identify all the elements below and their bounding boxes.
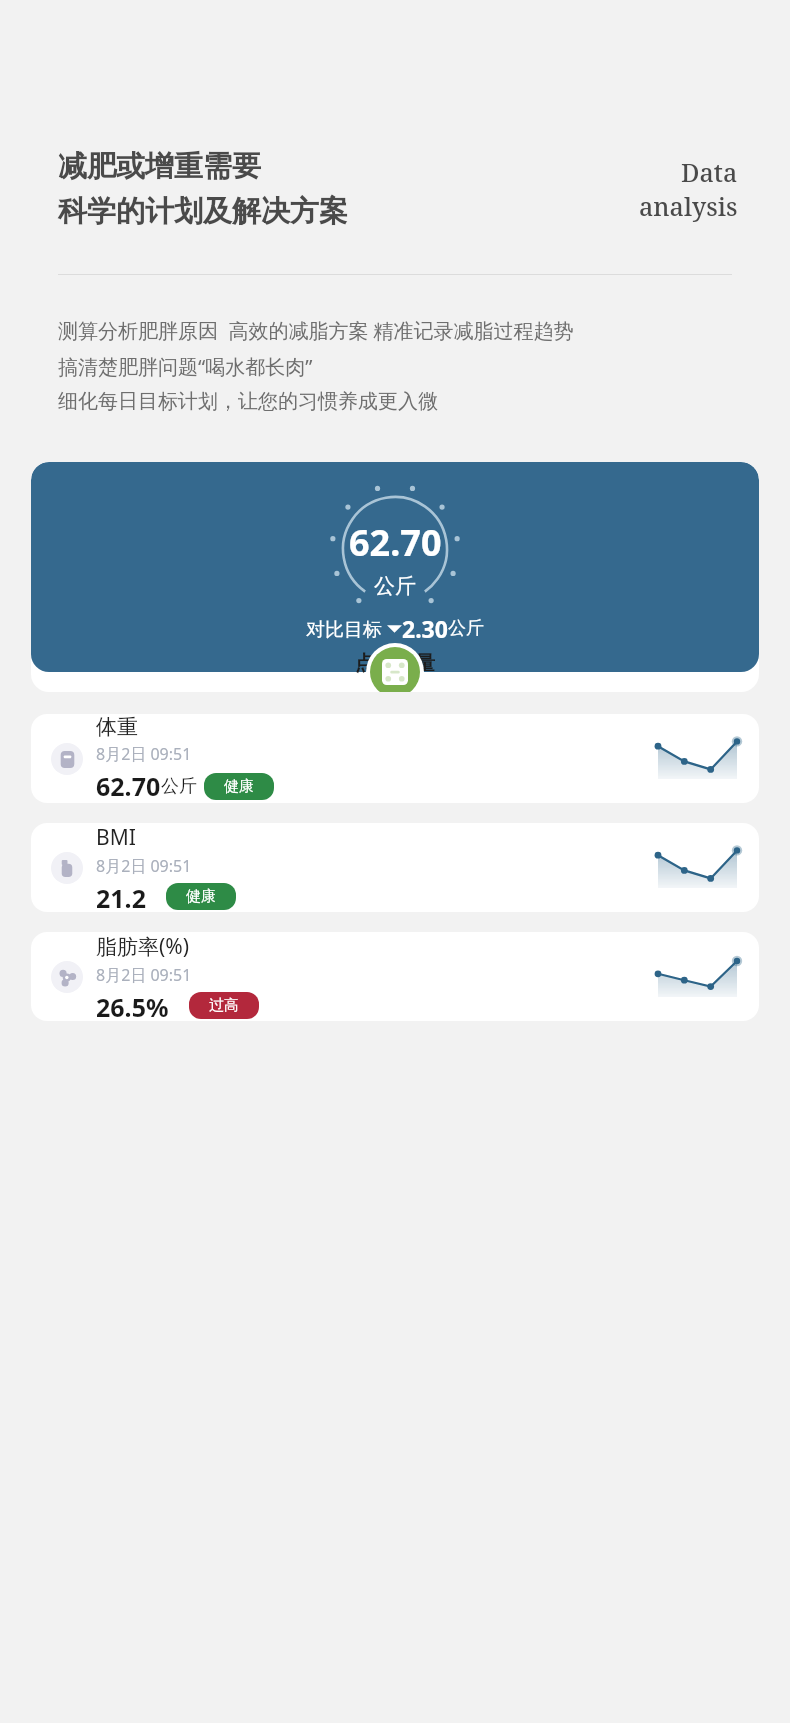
button[interactable]: 62.70 (31, 462, 759, 692)
staticText: analysis (639, 189, 738, 223)
staticText: 8月2日 09:51 (96, 743, 192, 765)
staticText: 过高 (209, 996, 239, 1015)
staticText: 科学的计划及解决方案 (58, 193, 348, 230)
staticText: 21.2 (96, 881, 146, 912)
staticText: 健康 (224, 777, 254, 796)
staticText: 62.70 (96, 769, 161, 803)
staticText: 测算分析肥胖原因 高效的减脂方案 精准记录减脂过程趋势 (58, 317, 574, 344)
button[interactable]: 脂肪率(%) (31, 932, 759, 1021)
staticText: 点击测量 (355, 651, 435, 676)
button[interactable]: BMI (31, 823, 759, 912)
staticText: 62.70 (349, 518, 442, 567)
staticText: 对比目标 (306, 616, 387, 642)
staticText: 细化每日目标计划，让您的习惯养成更入微 (58, 389, 438, 414)
staticText: 26.5% (96, 990, 169, 1021)
staticText: 公斤 (448, 617, 484, 640)
staticText: 2.30 (402, 613, 448, 644)
button[interactable]: 开始测量 (370, 647, 420, 692)
staticText: 体重 (96, 714, 138, 740)
staticText: 搞清楚肥胖问题“喝水都长肉” (58, 353, 313, 380)
staticText: 8月2日 09:51 (96, 855, 192, 877)
staticText: BMI (96, 823, 136, 852)
staticText: 公斤 (374, 573, 416, 599)
staticText: Data (681, 155, 738, 189)
staticText: 健康 (186, 887, 216, 906)
staticText: 减肥或增重需要 (58, 148, 261, 185)
staticText: 公斤 (161, 775, 197, 798)
staticText: 脂肪率(%) (96, 932, 190, 961)
staticText: 8月2日 09:51 (96, 964, 192, 986)
button[interactable]: 体重 (31, 714, 759, 803)
